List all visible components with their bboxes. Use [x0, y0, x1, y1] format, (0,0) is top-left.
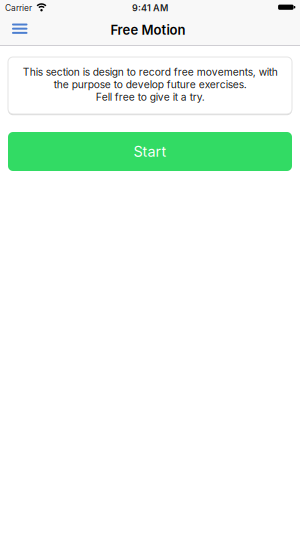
button[interactable]: Start [8, 132, 292, 171]
staticText: This section is design to record free mo… [22, 66, 277, 103]
staticText: Free Motion [110, 22, 185, 38]
staticText: 9:41 AM [132, 2, 168, 13]
button[interactable]: Menu [0, 16, 37, 45]
staticText: Start [133, 143, 166, 160]
staticText: Carrier [5, 3, 32, 13]
